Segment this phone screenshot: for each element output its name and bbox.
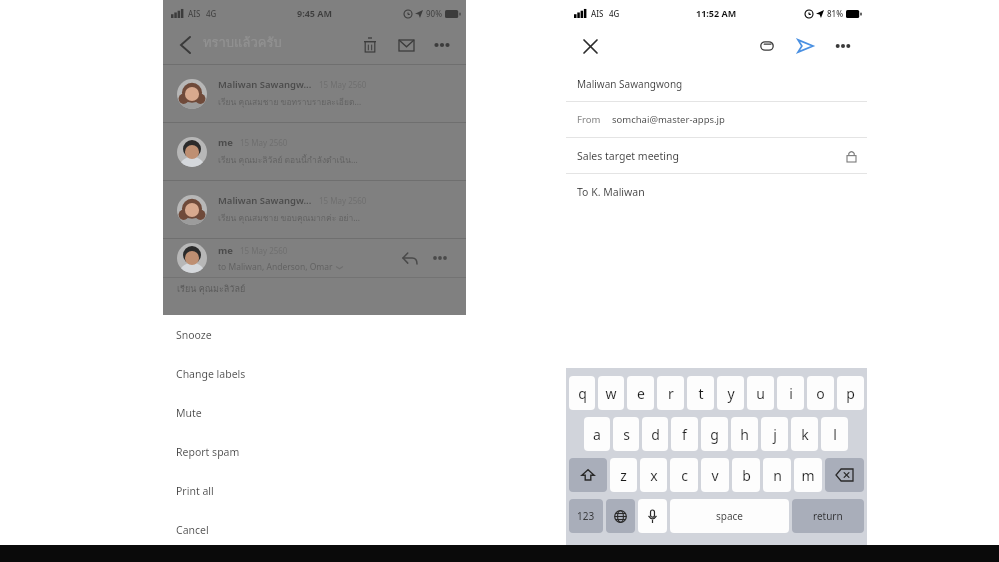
button[interactable]: g [701,417,728,451]
staticText: 9:45 AM [297,7,333,19]
button[interactable]: s [613,417,639,451]
button[interactable]: t [687,376,714,410]
button[interactable]: Print all [163,471,466,510]
button[interactable]: o [807,376,834,410]
button[interactable]: Snooze [163,315,466,354]
staticText: y [727,384,735,403]
button[interactable]: me [163,122,466,180]
button[interactable]: Maliwan Sawangw... [163,64,466,122]
button[interactable]: Backspace [825,458,864,492]
button[interactable]: h [731,417,758,451]
button[interactable]: i [777,376,804,410]
staticText: w [605,384,617,403]
button[interactable]: Reply [398,246,422,270]
button[interactable]: Cancel [163,510,466,549]
button[interactable]: b [732,458,760,492]
button[interactable]: l [821,417,848,451]
button[interactable]: Dictation [638,499,667,533]
button[interactable]: More options [428,31,456,59]
staticText: i [789,384,793,403]
staticText: a [593,425,601,444]
button[interactable]: n [763,458,791,492]
button[interactable]: j [761,417,788,451]
staticText: 15 May 2560 [240,245,288,256]
button[interactable]: Send [791,32,819,60]
button[interactable]: More [428,246,452,270]
button[interactable]: Close [576,32,604,60]
staticText: Report spam [176,445,240,459]
button[interactable]: Change language [606,499,635,533]
staticText: x [650,466,658,485]
button[interactable]: From [566,102,867,137]
button[interactable]: r [657,376,684,410]
staticText: 90% [426,8,442,19]
button[interactable]: Maliwan Sawangw... [163,180,466,238]
button[interactable]: return [792,499,864,533]
button[interactable]: Sales target meeting [566,138,867,173]
staticText: t [698,384,704,403]
staticText: เรียน คุณมะลิวัลย์ [177,282,246,296]
button[interactable]: Delete [356,31,384,59]
button[interactable]: Mark unread [392,31,420,59]
button[interactable]: y [717,376,744,410]
button[interactable]: Back [171,31,199,59]
button[interactable]: f [671,417,698,451]
staticText: m [801,466,815,485]
button[interactable]: More options [829,32,857,60]
button[interactable]: c [670,458,698,492]
staticText: เรียน คุณมะลิวัลย์ ตอนนี้กำลังดำเนิน… [218,153,358,167]
staticText: 15 May 2560 [319,195,367,206]
staticText: s [623,425,630,444]
button[interactable]: space [670,499,789,533]
staticText: Change labels [176,367,246,381]
button[interactable]: a [584,417,610,451]
button[interactable]: Change labels [163,354,466,393]
staticText: me [218,244,233,257]
button[interactable]: e [627,376,654,410]
staticText: l [833,425,837,444]
staticText: 11:52 AM [696,7,737,19]
staticText: Print all [176,484,214,498]
staticText: Mute [176,406,202,420]
button[interactable]: p [837,376,864,410]
button[interactable]: w [598,376,624,410]
staticText: To K. Maliwan [577,185,645,199]
staticText: p [846,384,855,403]
staticText: somchai@master-apps.jp [612,113,725,126]
button[interactable]: k [791,417,818,451]
button[interactable]: d [642,417,668,451]
staticText: AIS [188,8,201,19]
staticText: h [740,425,749,444]
button[interactable]: x [640,458,667,492]
staticText: ทราบแล้วครับ [203,32,282,53]
button[interactable]: q [569,376,595,410]
staticText: Snooze [176,328,212,342]
staticText: Sales target meeting [577,149,847,163]
staticText: return [813,509,843,523]
button[interactable]: z [610,458,637,492]
button[interactable]: Report spam [163,432,466,471]
staticText: u [756,384,765,403]
staticText: Maliwan Sawangw... [218,78,312,91]
staticText: v [711,466,719,485]
button[interactable]: m [794,458,822,492]
button[interactable]: Shift [569,458,607,492]
staticText: to Maliwan, Anderson, Omar [218,261,333,273]
staticText: 4G [206,8,217,19]
staticText: 123 [577,509,595,523]
button[interactable]: u [747,376,774,410]
button[interactable]: Numbers [569,499,603,533]
staticText: e [637,384,645,403]
button[interactable]: me [163,238,466,300]
staticText: AIS [591,8,604,19]
button[interactable]: To K. Maliwan [566,174,867,209]
staticText: c [681,466,688,485]
staticText: 15 May 2560 [240,137,288,148]
button[interactable]: Mute [163,393,466,432]
button[interactable]: Attach [753,32,781,60]
button[interactable]: Maliwan Sawangwong [566,66,867,101]
staticText: เรียน คุณสมชาย ขอทราบรายละเอียด… [218,95,362,109]
button[interactable]: v [701,458,729,492]
staticText: z [620,466,627,485]
staticText: k [801,425,809,444]
